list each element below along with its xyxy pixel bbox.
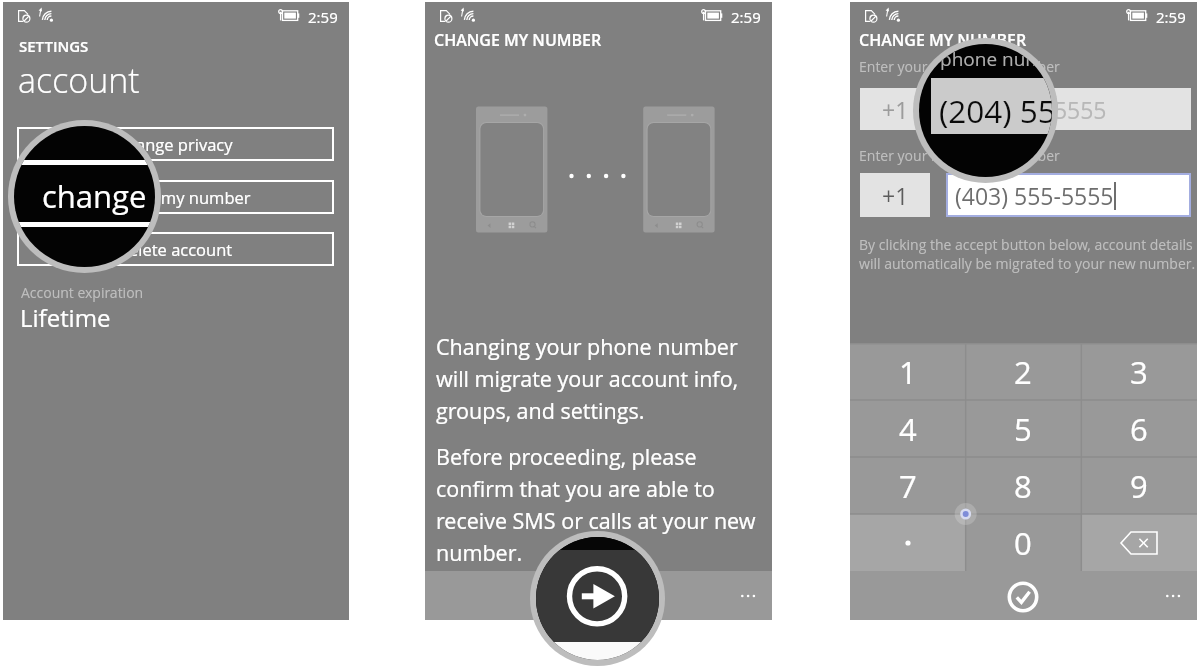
button[interactable]: 0 (965, 514, 1081, 571)
staticText: Before proceeding, please confirm that y… (436, 442, 764, 567)
button[interactable]: 3 (1081, 343, 1197, 400)
button[interactable]: 1 (850, 343, 965, 400)
button[interactable] (850, 514, 965, 571)
staticText: 2 (1014, 351, 1032, 393)
button[interactable]: More options (741, 591, 757, 601)
button[interactable]: More options (1166, 591, 1182, 601)
staticText: 9 (1130, 465, 1148, 507)
staticText: (204) 555-5555 (948, 94, 1107, 125)
button[interactable]: Accept (1007, 581, 1039, 613)
button[interactable]: delete account (17, 232, 334, 266)
staticText: +1 (882, 180, 909, 211)
staticText: 6 (1130, 408, 1148, 450)
staticText: Lifetime (20, 301, 111, 334)
staticText: 8 (1014, 465, 1032, 507)
other: Backspace (1120, 531, 1158, 555)
button[interactable]: 7 (850, 457, 965, 514)
staticText: account (18, 57, 140, 103)
staticText: (403) 555-5555 (955, 180, 1114, 211)
staticText: 3 (1130, 351, 1148, 393)
button[interactable]: 8 (965, 457, 1081, 514)
staticText: Changing your phone number will migrate … (436, 332, 756, 425)
button[interactable]: +1 (860, 88, 930, 130)
staticText: change my number (101, 186, 251, 208)
button[interactable]: (403) 555-5555 (946, 173, 1191, 217)
button[interactable]: change my number (17, 180, 334, 214)
staticText: 0 (1014, 522, 1032, 564)
button[interactable]: (204) 555-5555 (938, 88, 1191, 130)
staticText: 2:59 (308, 7, 338, 27)
button[interactable]: Next (582, 579, 616, 613)
button[interactable]: 6 (1081, 400, 1197, 457)
button[interactable]: 4 (850, 400, 965, 457)
staticText: 2:59 (1156, 7, 1186, 27)
staticText: Enter your new phone number (859, 146, 1060, 165)
staticText: By clicking the accept button below, acc… (859, 235, 1200, 273)
staticText: CHANGE MY NUMBER (434, 29, 602, 51)
staticText: Account expiration (21, 283, 144, 302)
staticText: change (42, 175, 147, 217)
button[interactable]: +1 (860, 173, 930, 217)
staticText: 2:59 (731, 7, 761, 27)
staticText: 1 (899, 351, 917, 393)
staticText: +1 (882, 94, 909, 125)
button[interactable]: change privacy (17, 127, 334, 161)
staticText: change privacy (118, 133, 233, 155)
button[interactable]: 5 (965, 400, 1081, 457)
staticText: 4 (899, 408, 917, 450)
staticText: Enter your new phone number (859, 57, 1060, 76)
staticText: phone num (940, 46, 1044, 72)
staticText: (204) 55 (939, 89, 1052, 132)
staticText: SETTINGS (19, 36, 89, 56)
button[interactable]: 9 (1081, 457, 1197, 514)
staticText: delete account (119, 238, 233, 260)
staticText: CHANGE MY NUMBER (859, 29, 1027, 51)
button[interactable]: Backspace (1081, 514, 1197, 571)
staticText: 5 (1014, 408, 1032, 450)
button[interactable]: 2 (965, 343, 1081, 400)
staticText: 7 (899, 465, 917, 507)
